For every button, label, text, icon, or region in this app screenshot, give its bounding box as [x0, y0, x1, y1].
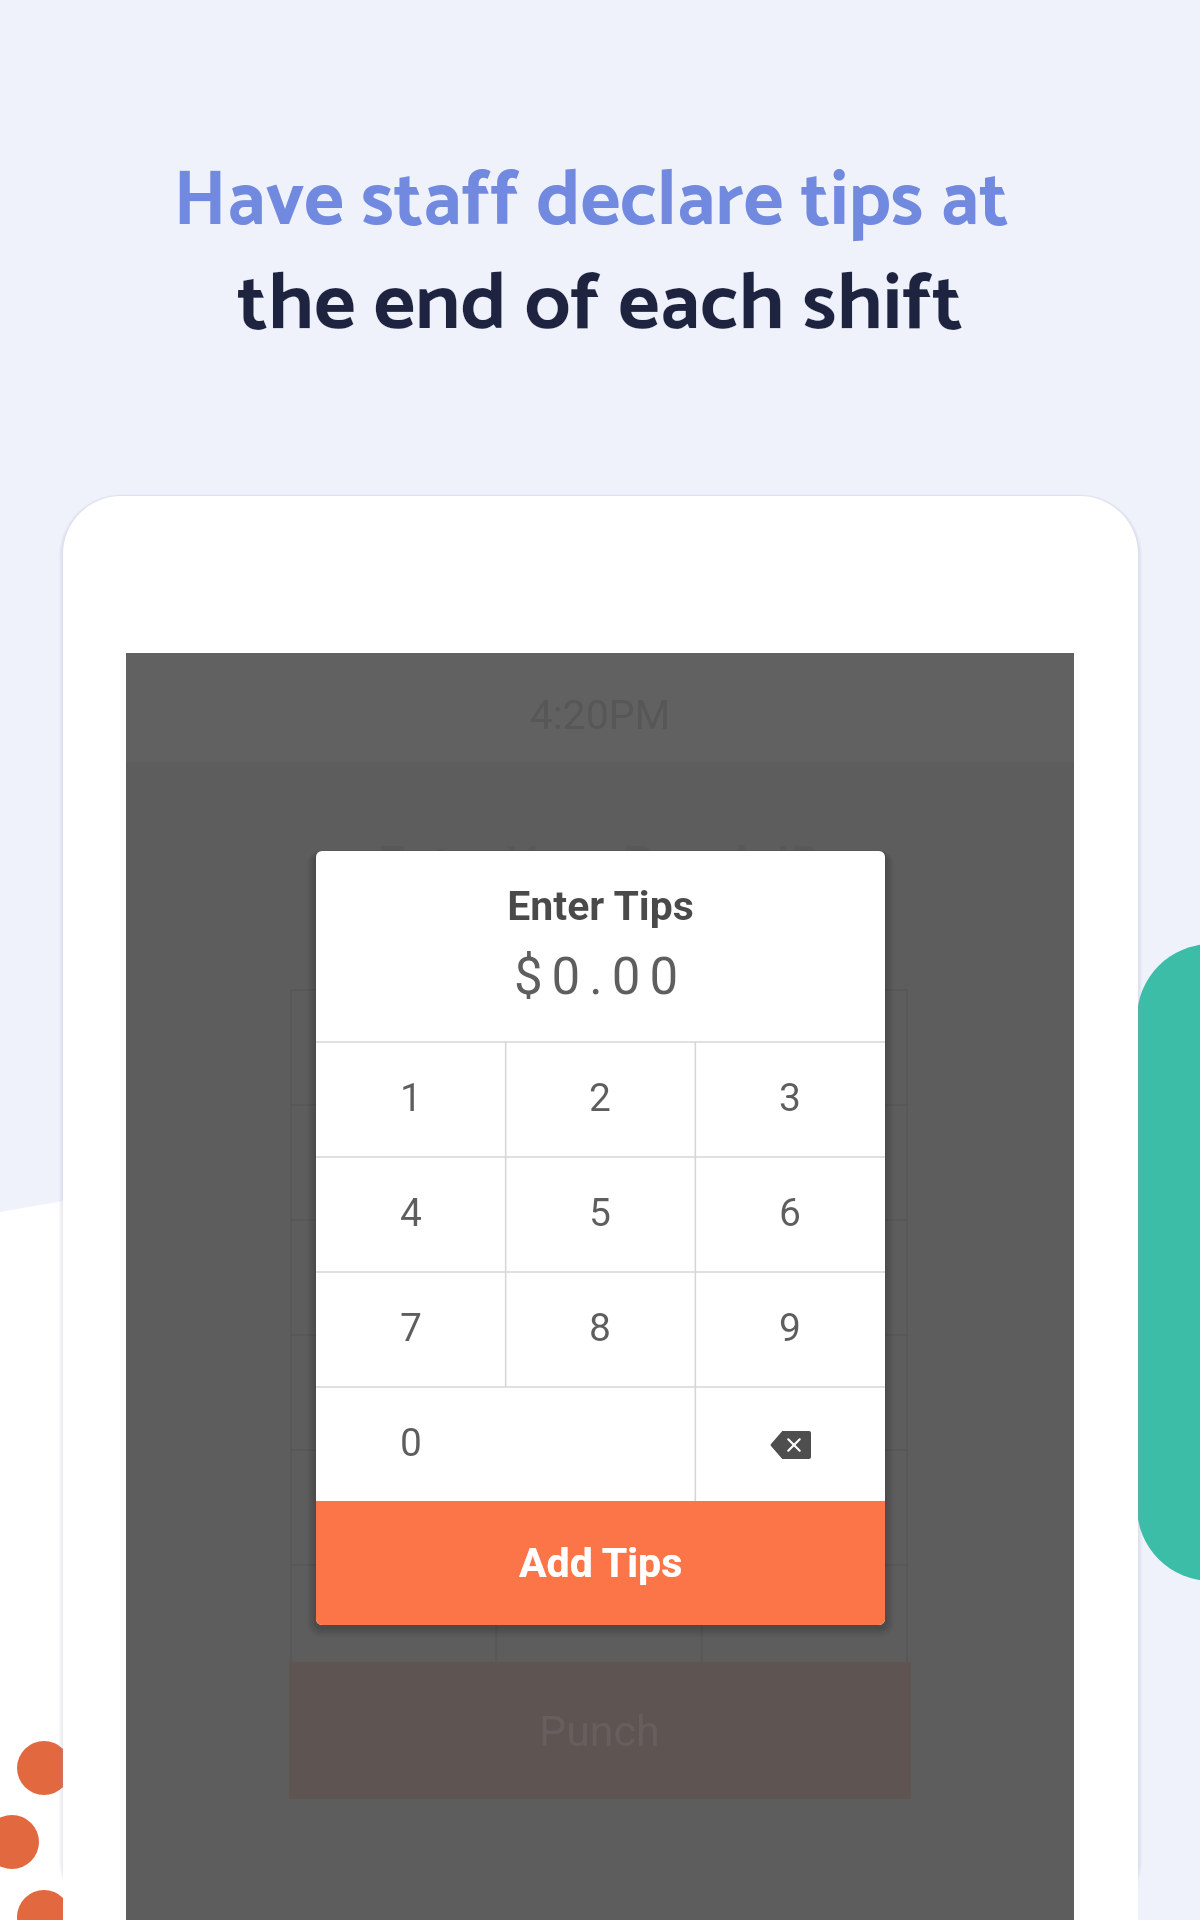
staticText: 2	[589, 1075, 611, 1121]
staticText: Enter Tips	[316, 882, 885, 930]
staticText: 7	[400, 1305, 422, 1351]
staticText: $0.00	[316, 947, 885, 1007]
button[interactable]: 0	[316, 1387, 695, 1502]
button[interactable]: Add Tips	[316, 1501, 885, 1625]
button[interactable]: 8	[505, 1272, 695, 1387]
staticText: Add Tips	[519, 1539, 683, 1587]
staticText: 4	[400, 1190, 422, 1236]
staticText: 8	[589, 1305, 611, 1351]
staticText: Enter Your Punch ID	[126, 836, 1074, 895]
button[interactable]: 7	[316, 1272, 505, 1387]
staticText: 6	[779, 1190, 801, 1236]
staticText: Punch	[539, 1706, 660, 1756]
button[interactable]: 3	[695, 1042, 885, 1157]
button[interactable]: 6	[695, 1157, 885, 1272]
button[interactable]: 1	[316, 1042, 505, 1157]
staticText: 9	[779, 1305, 801, 1351]
staticText: 1	[400, 1075, 422, 1121]
staticText: the end of each shift	[0, 240, 1200, 372]
staticText: Have staff declare tips at	[0, 139, 1191, 265]
button[interactable]: 2	[505, 1042, 695, 1157]
button[interactable]: 4	[316, 1157, 505, 1272]
button[interactable]: 5	[505, 1157, 695, 1272]
button[interactable]: Backspace	[695, 1387, 885, 1502]
staticText: 0	[400, 1420, 422, 1466]
button[interactable]: 9	[695, 1272, 885, 1387]
staticText: 5	[589, 1190, 611, 1236]
staticText: 3	[779, 1075, 801, 1121]
